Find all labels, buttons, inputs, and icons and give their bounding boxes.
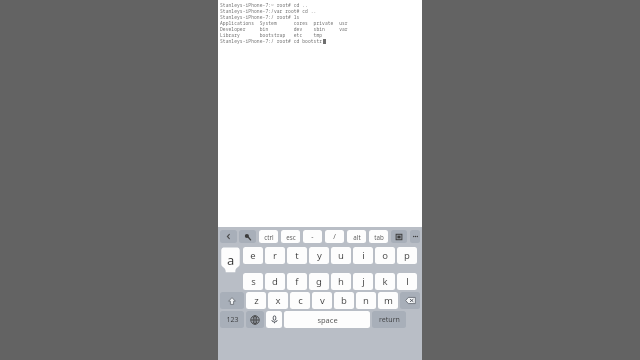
staticText: e [250,249,256,262]
staticText: s [251,275,256,288]
staticText: d [272,275,278,288]
staticText: i [362,249,365,262]
button[interactable]: s [243,273,263,290]
staticText: o [382,249,388,262]
button[interactable]: Change language [246,311,264,328]
button[interactable]: Shift [220,292,244,309]
staticText: r [273,249,277,262]
button[interactable]: / [325,230,344,243]
staticText: u [338,249,344,262]
button[interactable]: v [312,292,332,309]
staticText: Stanleys-iPhone-7:/var root# cd .. [220,8,317,14]
staticText: x [275,294,281,307]
button[interactable]: Backspace [400,292,420,309]
staticText: n [363,294,369,307]
staticText: Library bootstrap etc tmp [220,32,323,38]
button[interactable]: t [287,247,307,264]
button[interactable]: h [331,273,351,290]
staticText: y [317,249,322,262]
button[interactable]: x [268,292,288,309]
button[interactable]: Hide keyboard [391,230,407,243]
button[interactable]: i [353,247,373,264]
button[interactable]: Keyboard shortcut [239,230,256,243]
staticText: c [298,294,303,307]
button[interactable]: ctrl [259,230,278,243]
staticText: - [311,232,314,242]
button[interactable]: d [265,273,285,290]
button[interactable]: More options [410,230,420,243]
staticText: return [379,315,400,325]
button[interactable]: j [353,273,373,290]
button[interactable]: esc [281,230,300,243]
staticText: a [227,251,235,269]
staticText: space [317,315,338,325]
staticText: Stanleys-iPhone-7:/ root# ls [220,14,300,20]
button[interactable]: 123 [220,311,244,328]
staticText: m [384,294,393,307]
button[interactable]: y [309,247,329,264]
button[interactable]: space [284,311,370,328]
staticText: Applications System cores private usr [220,20,348,26]
staticText: k [382,275,388,288]
button[interactable]: tab [369,230,388,243]
button[interactable]: m [378,292,398,309]
staticText: / [333,232,336,242]
staticText: 123 [226,315,239,325]
button[interactable]: k [375,273,395,290]
button[interactable]: Dictate [266,311,282,328]
staticText: v [320,294,325,307]
staticText: b [341,294,347,307]
staticText: g [316,275,322,288]
button[interactable]: b [334,292,354,309]
staticText: ctrl [264,233,274,241]
button[interactable]: e [243,247,263,264]
staticText: Stanleys-iPhone-7:~ root# cd .. [220,2,308,8]
staticText: j [362,275,365,288]
button[interactable]: p [397,247,417,264]
button[interactable]: c [290,292,310,309]
button[interactable]: z [246,292,266,309]
button[interactable]: - [303,230,322,243]
staticText: t [295,249,299,262]
button[interactable]: Back [220,230,237,243]
button[interactable]: alt [347,230,366,243]
button[interactable]: l [397,273,417,290]
button[interactable]: r [265,247,285,264]
staticText: h [338,275,344,288]
staticText: alt [353,233,361,241]
staticText: Developer bin dev sbin var [220,26,348,32]
staticText: Stanleys-iPhone-7:/ root# cd bootstr [220,38,323,44]
staticText: esc [286,233,296,241]
button[interactable]: g [309,273,329,290]
button[interactable]: u [331,247,351,264]
staticText: z [254,294,259,307]
button[interactable]: o [375,247,395,264]
button[interactable]: f [287,273,307,290]
staticText: tab [374,233,384,241]
staticText: p [404,249,410,262]
button[interactable]: n [356,292,376,309]
staticText: l [406,275,409,288]
staticText: f [295,275,299,288]
button[interactable]: return [372,311,406,328]
